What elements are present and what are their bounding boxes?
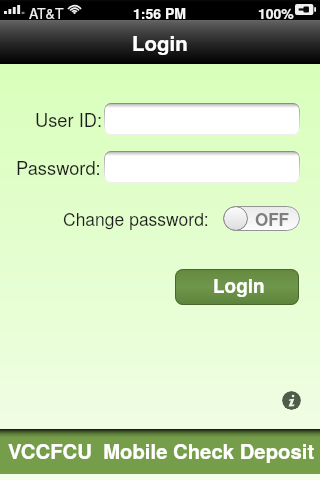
staticText: Change password: (63, 206, 209, 231)
button[interactable]: Login (175, 269, 299, 305)
staticText: 100% (258, 3, 294, 23)
button[interactable]: Change password toggle, off (223, 206, 300, 231)
button[interactable]: Text input (104, 151, 300, 183)
staticText: AT&T (29, 3, 64, 23)
staticText: Login (132, 28, 188, 57)
staticText: OFF (255, 207, 289, 231)
staticText: User ID: (35, 106, 103, 132)
staticText: Password: (16, 154, 101, 180)
staticText: Login (213, 272, 265, 299)
button[interactable]: Text input (104, 103, 300, 135)
button[interactable]: Info (282, 391, 301, 410)
staticText: 1:56 PM (133, 3, 186, 23)
button[interactable]: VCCFCU Mobile Check Deposit (0, 429, 320, 474)
staticText: VCCFCU Mobile Check Deposit (8, 436, 315, 465)
